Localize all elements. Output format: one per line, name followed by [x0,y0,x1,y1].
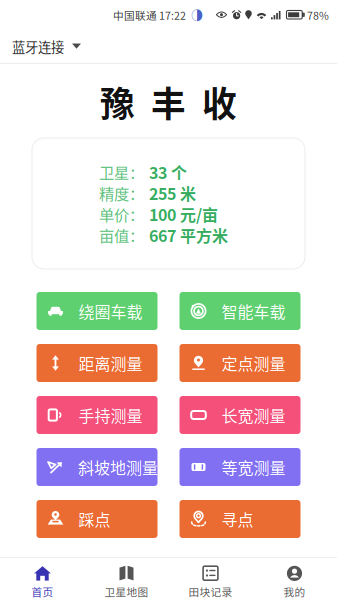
staticText: 卫星地图 [104,584,148,599]
staticText: 我的 [283,584,305,599]
staticText: 豫 丰 收 [100,77,237,127]
button[interactable]: 长宽测量 [179,396,300,434]
staticText: 定点测量 [221,351,285,375]
button[interactable]: 手持测量 [36,396,157,434]
staticText: 长宽测量 [221,403,285,427]
staticText: 斜坡地测量 [78,455,158,479]
staticText: 绕圈车载 [78,299,142,323]
staticText: 寻点 [221,507,253,531]
staticText: 667 平方米 [149,223,228,247]
staticText: 首页 [31,584,53,599]
staticText: 田块记录 [188,584,232,599]
staticText: 距离测量 [78,351,142,375]
button[interactable]: 等宽测量 [179,448,300,486]
staticText: 255 米 [149,181,196,205]
button[interactable]: 智能车载 [179,292,300,330]
button[interactable]: 距离测量 [36,344,157,382]
staticText: 33 个 [149,160,187,184]
button[interactable]: 卫星地图 [84,558,168,600]
button[interactable]: 绕圈车载 [36,292,157,330]
button[interactable]: 蓝牙连接 [0,30,91,63]
staticText: 亩值： [99,224,144,246]
button[interactable]: 首页 [0,558,84,600]
staticText: 蓝牙连接 [12,37,64,56]
staticText: 手持测量 [78,403,142,427]
staticText: 卫星： [99,161,144,183]
staticText: 中国联通 17:22 [113,7,186,23]
staticText: 踩点 [78,507,110,531]
staticText: ◑ [191,6,203,24]
staticText: 精度： [99,182,144,204]
staticText: 智能车载 [221,299,285,323]
staticText: 78% [307,7,329,23]
button[interactable]: 踩点 [36,500,157,538]
button[interactable]: 斜坡地测量 [36,448,157,486]
staticText: 等宽测量 [221,455,285,479]
button[interactable]: 寻点 [179,500,300,538]
staticText: 100 元/亩 [149,202,218,226]
button[interactable]: 田块记录 [168,558,252,600]
staticText: 单价： [99,203,144,225]
button[interactable]: 我的 [252,558,336,600]
button[interactable]: 定点测量 [179,344,300,382]
